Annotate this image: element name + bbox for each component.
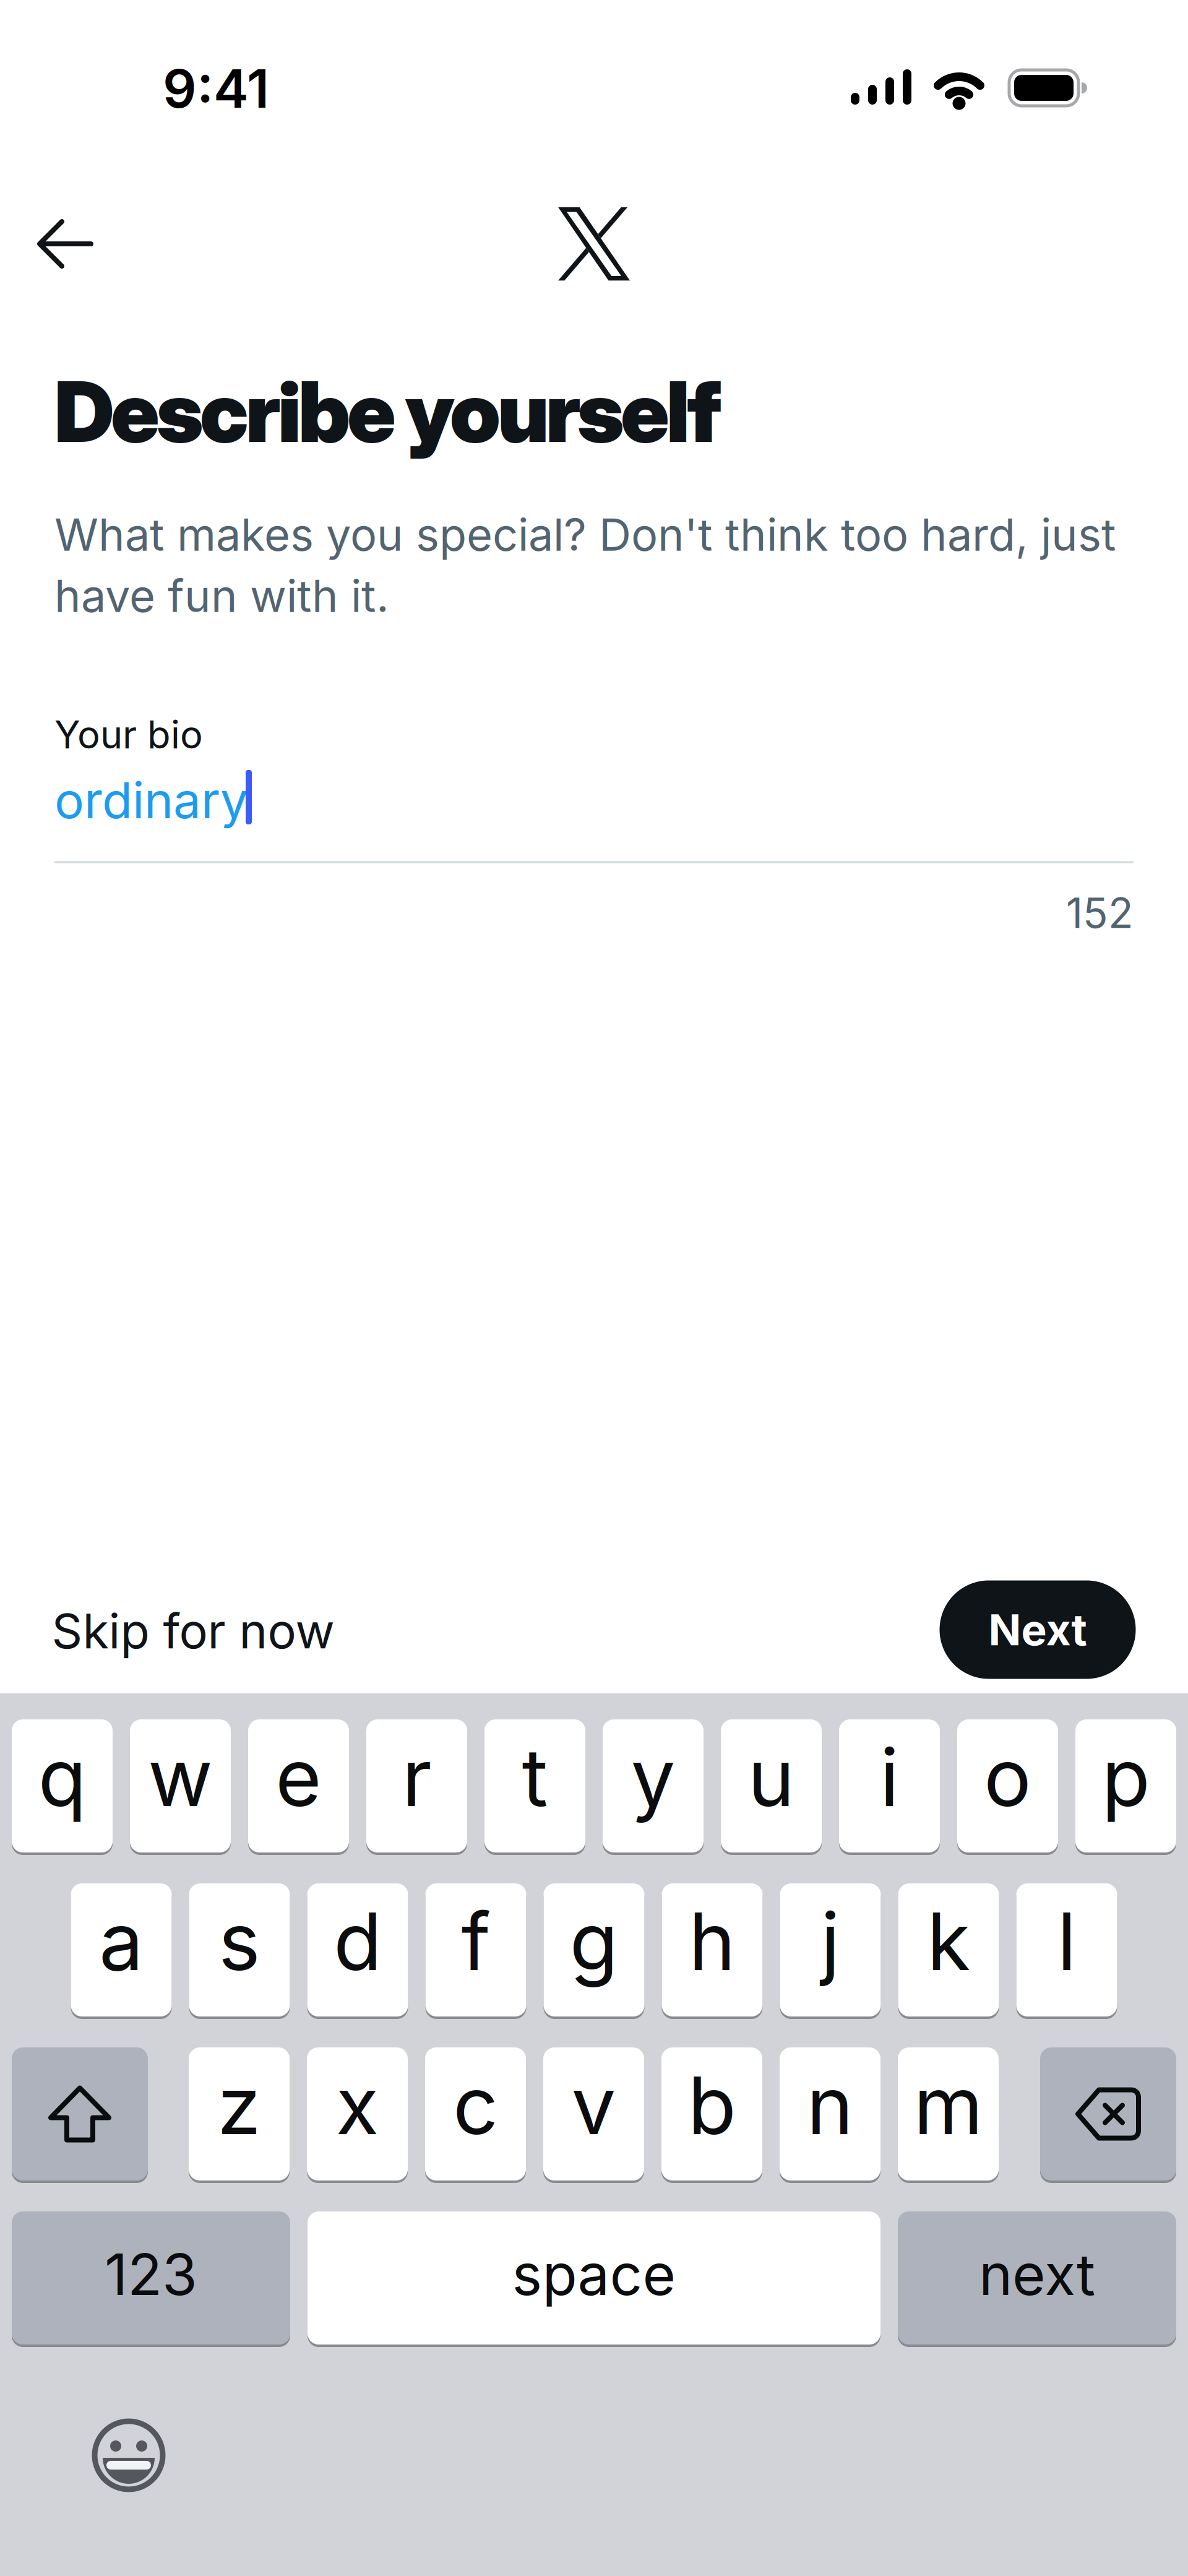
staticText: r xyxy=(402,1731,432,1824)
staticText: 123 xyxy=(105,2241,197,2308)
button[interactable]: n xyxy=(780,2046,880,2182)
staticText: h xyxy=(689,1895,736,1988)
staticText: What makes you special? Don't think too … xyxy=(54,508,1116,622)
button[interactable]: Emoji xyxy=(88,2415,169,2496)
button[interactable]: m xyxy=(898,2046,999,2182)
staticText: x xyxy=(336,2059,379,2152)
staticText: i xyxy=(880,1731,899,1824)
button[interactable]: next xyxy=(898,2210,1176,2346)
button[interactable]: Shift xyxy=(12,2046,148,2182)
staticText: 9:41 xyxy=(163,57,269,120)
button[interactable]: k xyxy=(898,1882,999,2018)
staticText: o xyxy=(984,1731,1031,1824)
staticText: j xyxy=(821,1895,840,1988)
button[interactable]: c xyxy=(425,2046,526,2182)
staticText: v xyxy=(571,2059,616,2152)
button[interactable]: r xyxy=(366,1718,467,1854)
button[interactable]: p xyxy=(1075,1718,1176,1854)
button[interactable]: b xyxy=(661,2046,762,2182)
button[interactable]: t xyxy=(484,1718,585,1854)
button[interactable]: g xyxy=(544,1882,644,2018)
button[interactable]: y xyxy=(603,1718,704,1854)
staticText: Next xyxy=(988,1604,1087,1655)
staticText: q xyxy=(38,1731,86,1824)
staticText: d xyxy=(334,1895,382,1988)
button[interactable]: Skip for now xyxy=(52,1588,334,1674)
staticText: l xyxy=(1057,1895,1076,1988)
staticText: s xyxy=(218,1895,260,1988)
staticText: e xyxy=(275,1731,322,1824)
staticText: Your bio xyxy=(54,712,203,757)
staticText: k xyxy=(927,1895,970,1988)
button[interactable]: 123 xyxy=(12,2210,290,2346)
staticText: b xyxy=(688,2059,736,2152)
button[interactable]: h xyxy=(662,1882,763,2018)
button[interactable]: z xyxy=(189,2046,290,2182)
staticText: Describe yourself xyxy=(54,362,722,461)
button[interactable]: e xyxy=(248,1718,349,1854)
staticText: w xyxy=(148,1731,213,1824)
staticText: Skip for now xyxy=(52,1603,334,1659)
button[interactable]: f xyxy=(425,1882,526,2018)
staticText: g xyxy=(570,1895,618,1988)
staticText: c xyxy=(453,2059,498,2152)
staticText: f xyxy=(461,1895,490,1988)
staticText: a xyxy=(99,1895,144,1988)
button[interactable]: Back xyxy=(21,204,108,284)
button[interactable]: Delete xyxy=(1040,2046,1176,2182)
staticText: p xyxy=(1102,1731,1150,1824)
button[interactable]: space xyxy=(308,2210,880,2346)
staticText: ordinary xyxy=(54,771,248,829)
button[interactable]: o xyxy=(957,1718,1058,1854)
button[interactable]: v xyxy=(543,2046,644,2182)
button[interactable]: d xyxy=(307,1882,408,2018)
button[interactable]: j xyxy=(780,1882,881,2018)
button[interactable]: a xyxy=(71,1882,172,2018)
staticText: t xyxy=(522,1731,548,1824)
staticText: z xyxy=(217,2059,261,2152)
button[interactable]: q xyxy=(12,1718,113,1854)
staticText: u xyxy=(748,1731,795,1824)
staticText: next xyxy=(979,2241,1095,2308)
staticText: m xyxy=(914,2059,983,2152)
staticText: y xyxy=(631,1731,675,1824)
button[interactable]: i xyxy=(839,1718,940,1854)
staticText: n xyxy=(807,2059,854,2152)
button[interactable]: x xyxy=(307,2046,408,2182)
button[interactable]: u xyxy=(721,1718,822,1854)
button[interactable]: s xyxy=(189,1882,290,2018)
staticText: 152 xyxy=(1066,889,1134,937)
button[interactable]: w xyxy=(130,1718,231,1854)
button[interactable]: Next xyxy=(940,1580,1136,1679)
button[interactable]: l xyxy=(1016,1882,1117,2018)
staticText: space xyxy=(512,2241,676,2308)
